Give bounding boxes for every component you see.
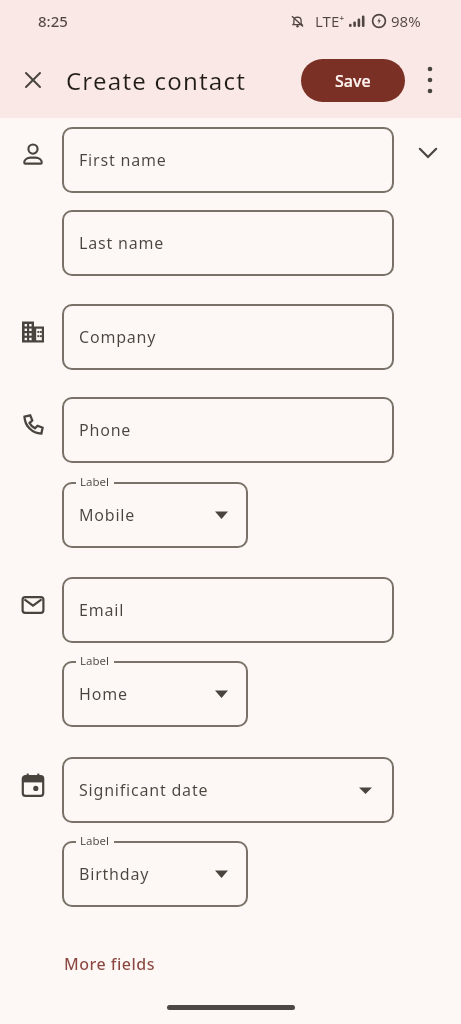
staticText: Company [79,326,157,348]
staticText: Significant date [79,779,209,801]
button[interactable]: Birthday [62,841,248,907]
staticText: Label [80,474,110,490]
staticText: Save [335,70,371,92]
staticText: Email [79,599,125,621]
button[interactable]: Home [62,661,248,727]
staticText: Mobile [79,504,136,526]
button[interactable] [21,68,45,92]
staticText: Phone [79,419,132,441]
staticText: 8:25 [38,11,68,31]
staticText: Last name [79,232,165,254]
button[interactable]: Company [62,304,394,370]
staticText: Label [80,833,110,849]
button[interactable]: Phone [62,397,394,463]
staticText: More fields [64,953,155,975]
button[interactable]: More fields [52,941,167,987]
staticText: First name [79,149,167,171]
staticText: 98% [391,11,421,31]
staticText: Create contact [66,64,247,97]
button[interactable]: Significant date [62,757,394,823]
button[interactable]: First name [62,127,394,193]
button[interactable]: Mobile [62,482,248,548]
staticText: Home [79,683,128,705]
button[interactable] [417,67,443,93]
staticText: Label [80,653,110,669]
button[interactable]: Save [301,59,405,102]
button[interactable]: Last name [62,210,394,276]
staticText: Birthday [79,863,150,885]
staticText: LTE⁺ [315,11,345,31]
button[interactable]: Email [62,577,394,643]
